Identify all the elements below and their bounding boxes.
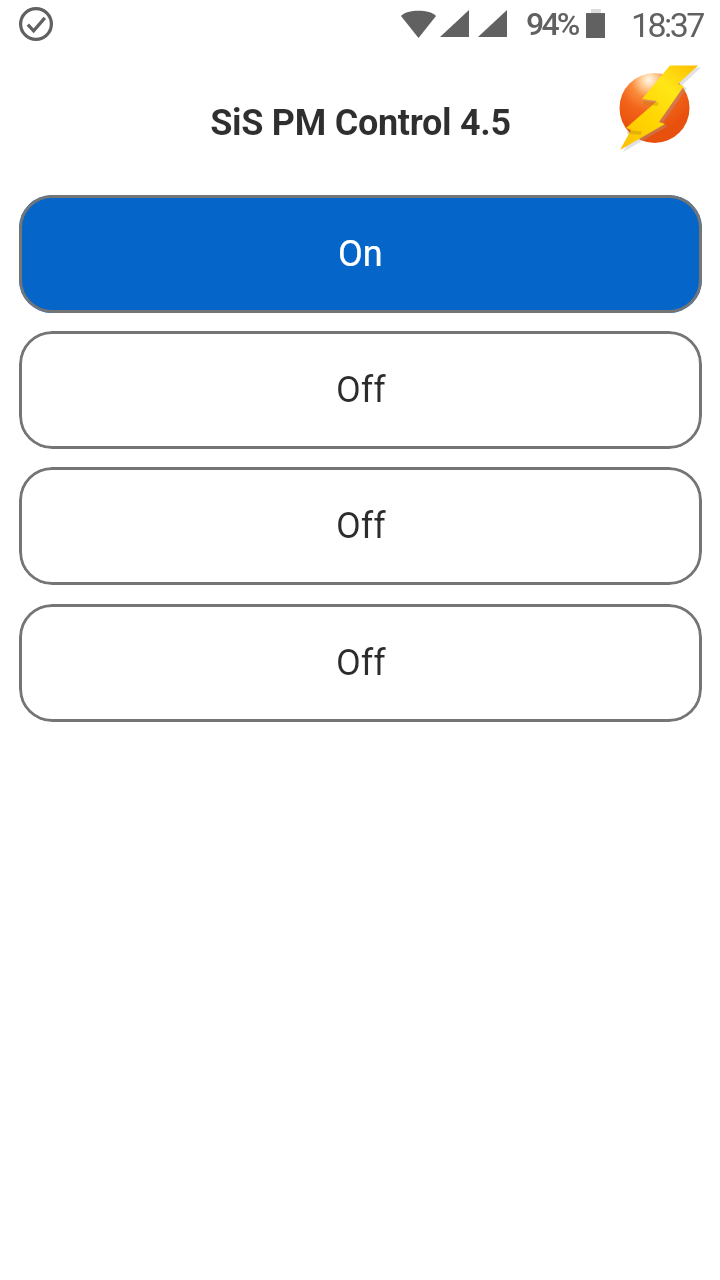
staticText: Off	[336, 642, 386, 684]
staticText: SiS PM Control 4.5	[210, 102, 511, 144]
staticText: Off	[336, 505, 386, 547]
button[interactable]: Off	[19, 331, 702, 449]
other: Battery	[586, 9, 605, 38]
button[interactable]: Off	[19, 604, 702, 722]
other: Signal SIM 2	[478, 10, 507, 37]
staticText: Off	[336, 369, 386, 411]
button[interactable]: Off	[19, 467, 702, 585]
staticText: 18:37	[631, 5, 703, 45]
other: SiS PM Control logo	[615, 60, 715, 160]
other: Task complete	[19, 7, 53, 41]
staticText: On	[338, 233, 383, 275]
other: Signal SIM 1	[440, 10, 469, 37]
other: Wi-Fi	[401, 9, 436, 38]
button[interactable]: On	[19, 195, 702, 313]
staticText: 94%	[526, 5, 578, 43]
